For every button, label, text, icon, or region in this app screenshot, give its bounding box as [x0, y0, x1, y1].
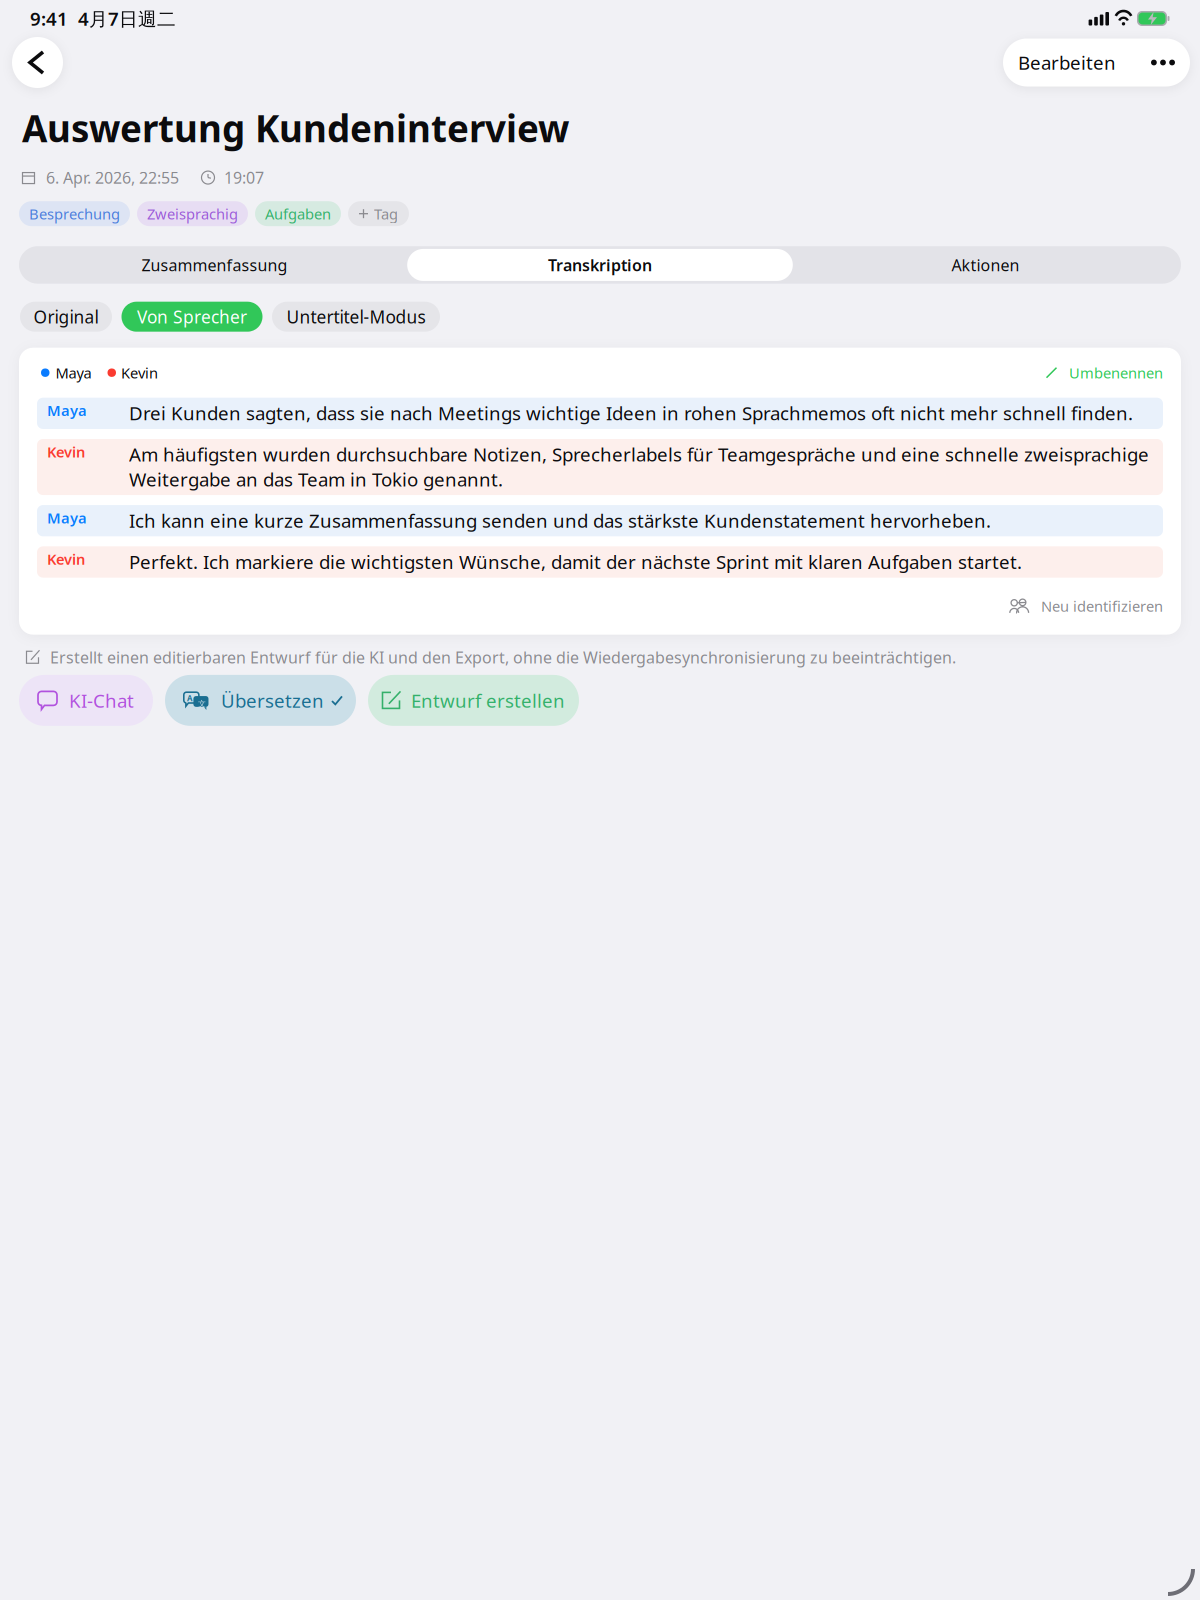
staticText: Tag — [374, 204, 398, 223]
staticText: Zweisprachig — [147, 204, 238, 223]
button[interactable]: Untertitel-Modus — [272, 302, 440, 332]
staticText: Maya — [55, 363, 91, 382]
staticText: 6. Apr. 2026, 22:55 — [46, 167, 179, 188]
button[interactable]: Aufgaben — [255, 201, 341, 226]
staticText: Zusammenfassung — [141, 254, 287, 275]
staticText: Entwurf erstellen — [411, 688, 565, 713]
staticText: KI-Chat — [69, 688, 134, 713]
button[interactable]: Transkription — [407, 249, 793, 281]
staticText: Umbenennen — [1069, 363, 1163, 382]
button[interactable]: Zweisprachig — [137, 201, 248, 226]
staticText: Neu identifizieren — [1041, 596, 1163, 616]
staticText: Von Sprecher — [137, 305, 247, 328]
staticText: Besprechung — [29, 204, 120, 223]
staticText: Bearbeiten — [1018, 50, 1116, 75]
staticText: Übersetzen — [221, 688, 324, 713]
button[interactable]: A — [165, 675, 356, 726]
staticText: Auswertung Kundeninterview — [22, 103, 569, 153]
staticText: Untertitel-Modus — [286, 305, 425, 328]
staticText: Kevin — [47, 549, 85, 569]
button[interactable]: Umbenennen — [1046, 363, 1163, 382]
button[interactable]: Besprechung — [19, 201, 130, 226]
button[interactable]: Zurück — [12, 37, 63, 88]
staticText: Original — [33, 305, 98, 328]
staticText: Maya — [47, 508, 87, 528]
staticText: Aktionen — [952, 254, 1020, 275]
staticText: 9:41 4月7日週二 — [30, 6, 176, 31]
button[interactable]: Entwurf erstellen — [368, 675, 579, 726]
staticText: Ich kann eine kurze Zusammenfassung send… — [129, 508, 991, 533]
button[interactable]: KI-Chat — [19, 675, 153, 726]
button[interactable]: Aktionen — [793, 249, 1178, 281]
staticText: Erstellt einen editierbaren Entwurf für … — [50, 647, 956, 668]
staticText: Perfekt. Ich markiere die wichtigsten Wü… — [129, 549, 1022, 574]
staticText: Maya — [47, 401, 87, 420]
staticText: Kevin — [121, 363, 158, 382]
button[interactable]: Zusammenfassung — [22, 249, 407, 281]
button[interactable]: Neu identifizieren — [1009, 596, 1163, 616]
button[interactable]: Tag — [348, 201, 409, 226]
button[interactable]: Von Sprecher — [121, 302, 262, 332]
staticText: Am häufigsten wurden durchsuchbare Notiz… — [129, 442, 1149, 492]
staticText: A — [187, 693, 193, 703]
staticText: Kevin — [47, 442, 85, 461]
staticText: 19:07 — [224, 167, 264, 188]
staticText: Drei Kunden sagten, dass sie nach Meetin… — [129, 401, 1133, 425]
staticText: Aufgaben — [265, 204, 331, 223]
button[interactable]: Bearbeiten — [1003, 38, 1190, 86]
staticText: 文 — [198, 699, 206, 709]
staticText: Transkription — [548, 254, 652, 275]
button[interactable]: Original — [20, 302, 112, 332]
